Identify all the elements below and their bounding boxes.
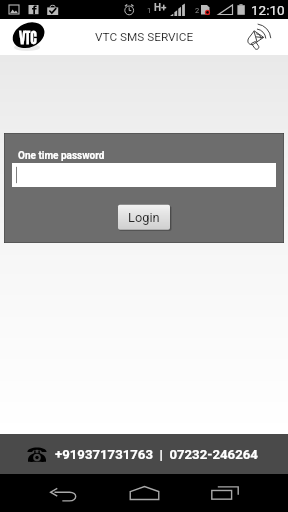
- staticText: 12:10: [251, 2, 285, 18]
- staticText: +919371731763 | 07232-246264: [55, 447, 258, 462]
- button[interactable]: +919371731763 | 07232-246264: [0, 434, 288, 474]
- staticText: 2: [195, 6, 200, 15]
- staticText: One time password: [18, 150, 105, 162]
- button[interactable]: VTC home: [0, 19, 288, 55]
- button[interactable]: Home: [126, 474, 162, 512]
- button[interactable]: [12, 163, 276, 187]
- button[interactable]: Login: [117, 204, 173, 232]
- button[interactable]: Back: [46, 476, 82, 512]
- staticText: VTC SMS SERVICE: [95, 30, 194, 44]
- staticText: 1: [147, 6, 152, 15]
- staticText: Login: [128, 210, 160, 225]
- staticText: H+: [154, 2, 167, 14]
- button[interactable]: Recent apps: [207, 474, 243, 512]
- staticText: VTC: [19, 28, 37, 46]
- button[interactable]: Broadcast announcement: [242, 19, 276, 55]
